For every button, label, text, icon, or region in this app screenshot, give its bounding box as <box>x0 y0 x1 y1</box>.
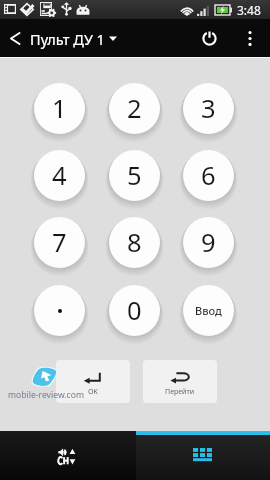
button[interactable]: 3 <box>183 83 234 134</box>
staticText: 2 <box>127 91 142 126</box>
staticText: 0 <box>127 293 142 328</box>
button[interactable]: OK <box>56 360 130 403</box>
button[interactable]: 8 <box>109 217 160 268</box>
staticText: mobile-review.com <box>8 389 84 401</box>
staticText: Перейти <box>165 387 195 397</box>
staticText: 1 <box>52 91 67 126</box>
button[interactable]: 9 <box>183 217 234 268</box>
staticText: 4 <box>52 158 67 193</box>
staticText: 7 <box>52 225 67 260</box>
staticText: 5 <box>127 158 142 193</box>
button[interactable]: 4 <box>34 150 85 201</box>
button[interactable]: Ввод <box>183 285 234 336</box>
button[interactable]: 5 <box>109 150 160 201</box>
button[interactable]: Back <box>0 19 30 58</box>
staticText: Пульт ДУ 1 <box>30 29 105 49</box>
button[interactable]: 6 <box>183 150 234 201</box>
button[interactable]: 7 <box>34 217 85 268</box>
staticText: OK <box>88 387 98 397</box>
staticText: 3 <box>201 91 216 126</box>
button[interactable]: 2 <box>109 83 160 134</box>
button[interactable]: Volume and channel <box>0 431 136 480</box>
button[interactable]: 1 <box>34 83 85 134</box>
button[interactable]: 0 <box>109 285 160 336</box>
button[interactable]: Пульт ДУ 1 <box>30 19 120 58</box>
button[interactable] <box>34 285 85 336</box>
staticText: 3:48 <box>237 2 261 18</box>
staticText: Ввод <box>195 303 222 318</box>
staticText: 9 <box>201 225 216 260</box>
staticText: 6 <box>201 158 216 193</box>
button[interactable]: Keypad <box>136 431 270 480</box>
button[interactable]: More options <box>237 19 263 58</box>
button[interactable]: Power <box>189 19 229 58</box>
button[interactable]: Перейти <box>143 360 217 403</box>
staticText: 8 <box>127 225 142 260</box>
